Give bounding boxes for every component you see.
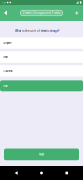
staticText: Watt xyxy=(3,55,8,58)
button[interactable]: Add xyxy=(72,7,81,18)
button[interactable]: Back xyxy=(7,166,25,180)
staticText: 1:20 xyxy=(2,1,6,4)
staticText: What is the unit of electric charge? xyxy=(15,29,59,33)
staticText: Ampere xyxy=(3,41,11,44)
button[interactable]: Ampere xyxy=(0,37,83,49)
staticText: Coulomb xyxy=(3,69,12,72)
staticText: Electric Charges and Fields xyxy=(23,11,60,15)
button[interactable]: Home xyxy=(32,166,50,180)
button[interactable]: Coulomb xyxy=(0,65,83,77)
button[interactable]: Electric Charges and Fields xyxy=(20,10,63,16)
button[interactable]: Sub xyxy=(0,80,83,91)
button[interactable]: Watt xyxy=(0,51,83,63)
button[interactable]: Next xyxy=(4,148,79,160)
staticText: Next xyxy=(39,153,44,156)
staticText: Sub xyxy=(3,84,7,87)
button[interactable]: Recent apps xyxy=(58,166,76,180)
button[interactable]: Back xyxy=(1,7,11,18)
